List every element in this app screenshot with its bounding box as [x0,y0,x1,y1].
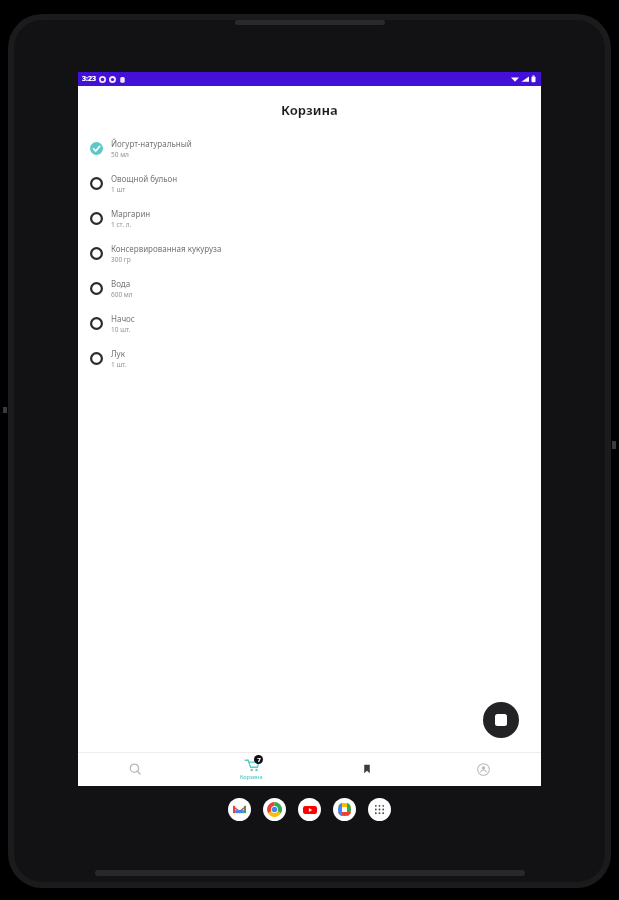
staticText: 3:23 [82,74,96,84]
button[interactable]: Йогурт-натуральный [78,131,541,166]
button[interactable]: Консервированная кукуруза [78,236,541,271]
staticText: 50 мл [111,150,129,159]
staticText: 600 мл [111,290,133,299]
staticText: Начос [111,313,135,324]
staticText: 1 шт [111,185,126,194]
staticText: 1 шт. [111,360,127,369]
staticText: Консервированная кукуруза [111,243,222,254]
button[interactable]: 7 [193,752,309,786]
staticText: Вода [111,278,131,289]
staticText: Корзина [281,101,338,119]
button[interactable]: Овощной бульон [78,166,541,201]
staticText: Лук [111,348,125,359]
button[interactable]: App [368,798,391,821]
staticText: 300 гр [111,255,131,264]
button[interactable]: Saved [309,752,425,786]
button[interactable]: App [228,798,251,821]
button[interactable]: App [263,798,286,821]
button[interactable]: Начос [78,306,541,341]
button[interactable]: Profile [425,752,541,786]
button[interactable]: App [333,798,356,821]
button[interactable]: App [298,798,321,821]
button[interactable]: Лук [78,341,541,376]
button[interactable]: Search [78,752,193,786]
staticText: 1 ст. л. [111,220,132,229]
staticText: 7 [257,756,261,763]
staticText: Маргарин [111,208,151,219]
staticText: Овощной бульон [111,173,178,184]
button[interactable]: Stop [483,702,519,738]
button[interactable]: Вода [78,271,541,306]
staticText: 10 шт. [111,325,131,334]
button[interactable]: Маргарин [78,201,541,236]
staticText: Корзина [240,773,263,780]
staticText: Йогурт-натуральный [111,138,192,149]
